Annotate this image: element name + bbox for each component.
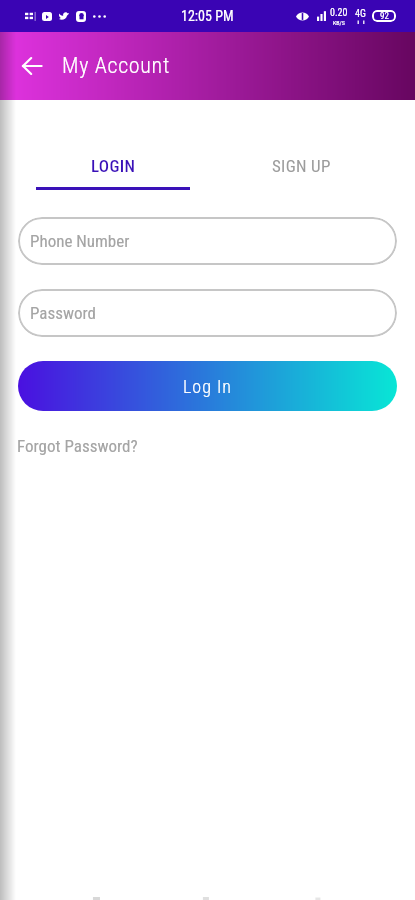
staticText: Forgot Password?	[17, 436, 138, 456]
staticText: Phone Number	[30, 231, 130, 251]
staticText: My Account	[62, 53, 170, 79]
staticText: 4G	[355, 8, 366, 20]
button[interactable]: SIGN UP	[207, 147, 396, 190]
staticText: KB/S	[333, 19, 345, 26]
staticText: 0.20	[330, 7, 348, 19]
staticText: Password	[30, 303, 97, 323]
staticText: Log In	[183, 376, 233, 397]
staticText: 92	[380, 11, 389, 22]
staticText: LOGIN	[91, 156, 136, 176]
button[interactable]: Log In	[18, 361, 397, 411]
staticText: 12:05 PM	[181, 8, 234, 24]
button[interactable]: Back	[12, 46, 52, 86]
button[interactable]: Phone Number	[18, 217, 397, 265]
button[interactable]: Password	[18, 289, 397, 337]
staticText: SIGN UP	[272, 156, 331, 176]
button[interactable]: LOGIN	[19, 147, 207, 190]
button[interactable]: Forgot Password?	[17, 436, 138, 456]
